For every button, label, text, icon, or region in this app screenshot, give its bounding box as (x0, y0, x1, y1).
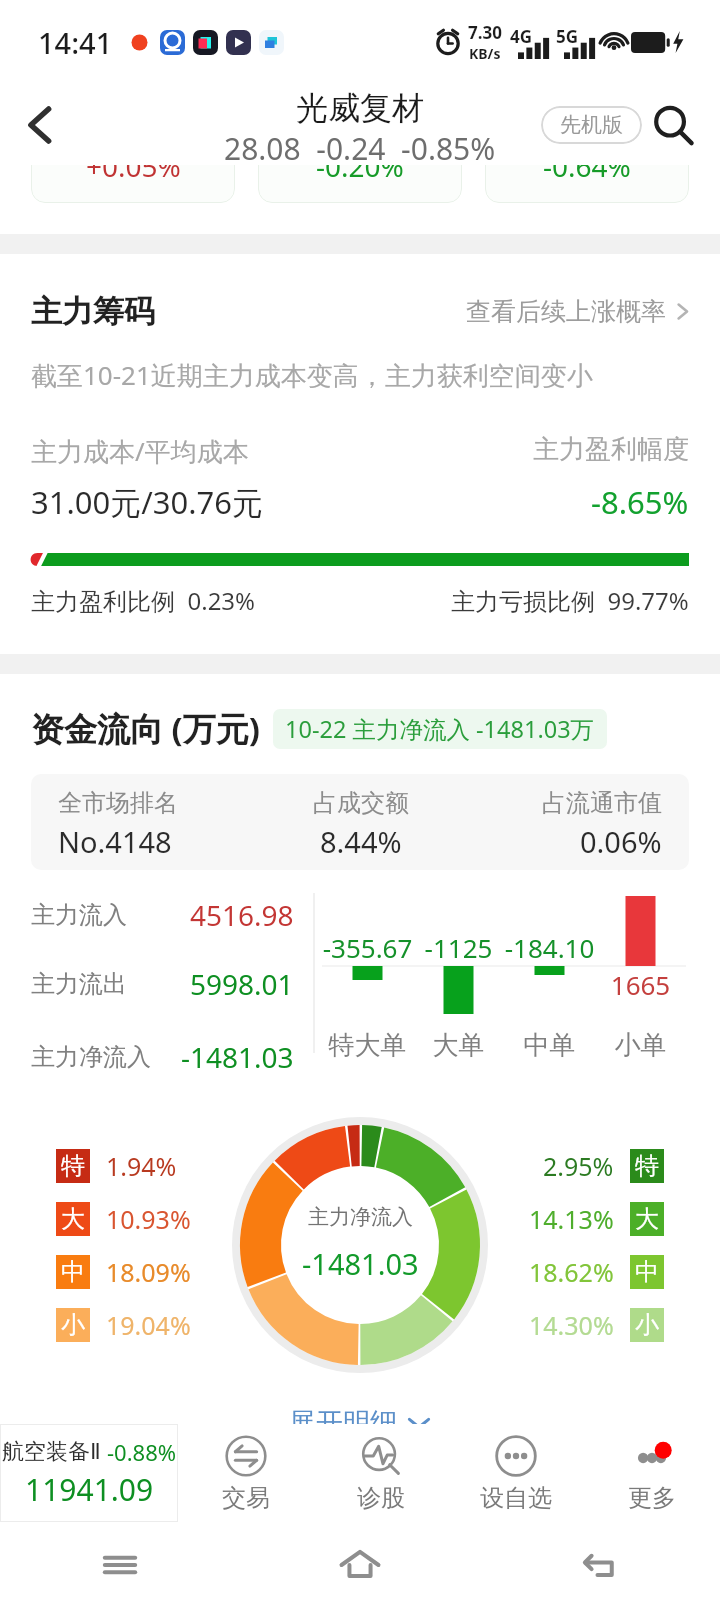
staticText: 全市场排名 (58, 788, 178, 818)
staticText: 占流通市值 (542, 788, 662, 818)
staticText: 中单 (504, 1029, 595, 1062)
staticText: 特大单 (322, 1029, 413, 1062)
staticText: 特 (61, 1151, 85, 1181)
staticText: +0.05% (86, 147, 181, 185)
staticText: 4G (510, 25, 533, 48)
staticText: 截至10-21近期主力成本变高，主力获利空间变小 (31, 357, 593, 393)
staticText: 资金流向 (万元) (31, 706, 260, 751)
staticText: 31.00元/30.76元 (31, 481, 264, 523)
staticText: -1481.03 (181, 1038, 294, 1076)
staticText: 小单 (595, 1029, 686, 1062)
button[interactable]: 交易 (178, 1424, 313, 1522)
staticText: 先机版 (560, 112, 623, 138)
staticText: 大单 (413, 1029, 504, 1062)
button[interactable]: -0.64% (485, 113, 689, 203)
staticText: -1481.03 (302, 1244, 419, 1283)
staticText: 2.95% (543, 1149, 614, 1183)
staticText: 14.13% (529, 1202, 614, 1236)
button[interactable]: 诊股 (313, 1424, 448, 1522)
button[interactable]: Home (240, 1522, 480, 1608)
staticText: 大 (61, 1204, 85, 1234)
staticText: 设自选 (480, 1483, 552, 1513)
staticText: 大 (635, 1204, 659, 1234)
staticText: 1665 (595, 967, 686, 1002)
staticText: 占成交额 (313, 788, 409, 818)
button[interactable]: Back (0, 84, 80, 165)
button[interactable]: Back (480, 1522, 720, 1608)
staticText: 28.08 -0.24 -0.85% (224, 128, 496, 169)
staticText: 5998.01 (190, 965, 294, 1003)
staticText: KB/s (469, 44, 501, 63)
staticText: 8.44% (320, 822, 402, 861)
button[interactable]: 航空装备Ⅱ (0, 1424, 178, 1522)
staticText: 14.30% (529, 1308, 614, 1342)
staticText: 中 (61, 1257, 85, 1287)
button[interactable]: 更多 (584, 1424, 720, 1522)
button[interactable]: 设自选 (448, 1424, 584, 1522)
staticText: -1125 (413, 930, 504, 965)
button[interactable]: 主力筹码 (31, 292, 689, 331)
staticText: 0.06% (580, 822, 662, 861)
staticText: 19.04% (106, 1308, 191, 1342)
staticText: 中 (635, 1257, 659, 1287)
staticText: 主力亏损比例 99.77% (451, 584, 689, 617)
staticText: 更多 (628, 1483, 676, 1513)
staticText: 11941.09 (25, 1469, 154, 1510)
button[interactable]: -0.20% (258, 113, 462, 203)
staticText: -8.65% (591, 481, 689, 523)
staticText: No.4148 (58, 822, 172, 861)
staticText: 1.94% (106, 1149, 177, 1183)
staticText: 14:41 (38, 23, 113, 62)
staticText: -0.20% (316, 147, 404, 185)
staticText: 主力筹码 (31, 292, 155, 331)
staticText: 主力净流入 (31, 1042, 151, 1072)
button[interactable]: Recent apps (0, 1522, 240, 1608)
staticText: -355.67 (322, 930, 413, 965)
staticText: 主力流出 (31, 969, 127, 999)
staticText: 主力盈利幅度 (533, 433, 689, 466)
staticText: 主力净流入 (308, 1204, 413, 1230)
staticText: 主力盈利比例 0.23% (31, 584, 256, 617)
staticText: -0.88% (107, 1437, 177, 1467)
staticText: 光威复材 (296, 88, 424, 128)
button[interactable]: 先机版 (541, 106, 642, 144)
staticText: -0.64% (543, 147, 631, 185)
staticText: -184.10 (504, 930, 595, 965)
staticText: 主力流入 (31, 900, 127, 930)
staticText: 展开明细 (289, 1406, 397, 1440)
staticText: 小 (635, 1310, 659, 1340)
staticText: 5G (556, 25, 579, 48)
button[interactable]: 展开明细 (0, 1406, 720, 1440)
staticText: 18.09% (106, 1255, 191, 1289)
staticText: 航空装备Ⅱ (2, 1438, 101, 1466)
staticText: 主力成本/平均成本 (31, 433, 249, 469)
staticText: 10-22 主力净流入 -1481.03万 (285, 713, 595, 745)
staticText: 查看后续上涨概率 (466, 296, 666, 327)
staticText: 4516.98 (190, 896, 294, 934)
staticText: 10.93% (106, 1202, 191, 1236)
staticText: 小 (61, 1310, 85, 1340)
staticText: 诊股 (357, 1483, 405, 1513)
staticText: 18.62% (529, 1255, 614, 1289)
staticText: 特 (635, 1151, 659, 1181)
button[interactable]: +0.05% (31, 113, 235, 203)
button[interactable]: Search (642, 94, 704, 156)
staticText: 交易 (222, 1483, 270, 1513)
staticText: 7.30 (468, 21, 502, 44)
